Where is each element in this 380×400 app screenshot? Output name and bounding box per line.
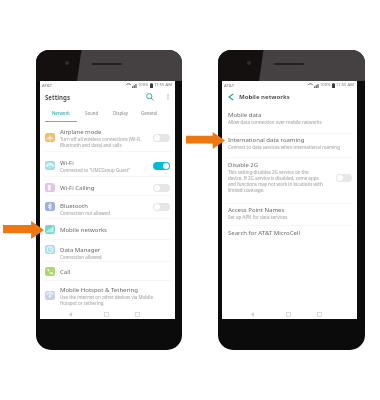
staticText: AT&T [42,82,53,88]
staticText: Mobile networks [60,226,107,234]
button[interactable]: Search for AT&T MicroCell [222,228,357,244]
button[interactable]: Recent apps [132,309,143,320]
staticText: Allow data connection over mobile networ… [228,119,322,125]
staticText: Set up APN for data services [228,214,288,220]
staticText: General [141,110,158,116]
button[interactable]: Mobile networks [40,222,175,237]
staticText: International data roaming [228,136,305,144]
button[interactable]: Display [106,106,134,120]
staticText: Connection allowed [60,254,102,260]
staticText: Mobile networks [239,93,290,101]
button[interactable]: Data Manager [40,242,175,262]
staticText: Mobile Hotspot & Tethering [60,286,138,294]
button[interactable]: Network [47,106,75,120]
staticText: Settings [45,93,70,101]
staticText: Bluetooth [60,202,88,210]
button[interactable]: Back [247,309,258,320]
staticText: Access Point Names [228,206,285,214]
staticText: Mobile data [228,111,262,119]
staticText: Connection not allowed [60,210,110,216]
button[interactable]: Search [144,91,156,103]
button[interactable]: Airplane mode [40,126,175,149]
staticText: AT&T [224,82,235,88]
staticText: 11:55 AM [154,82,172,88]
button[interactable]: Sound [78,106,106,120]
button[interactable]: Call [40,264,175,279]
staticText: Call [60,268,71,276]
staticText: Use the internet on other devices via Mo… [60,294,153,306]
button[interactable]: Mobile data [222,110,357,132]
staticText: Network [52,110,70,116]
staticText: This setting disables 2G service on the … [228,169,323,193]
button[interactable]: Disable 2G [222,160,357,198]
button[interactable]: Mobile Hotspot & Tethering [40,284,175,307]
staticText: Wi-Fi [60,159,74,167]
button[interactable]: Home [283,309,294,320]
staticText: Disable 2G [228,161,259,169]
staticText: 100% [320,82,331,88]
staticText: Search for AT&T MicroCell [228,229,300,237]
staticText: Connect to data services when internatio… [228,144,340,150]
button[interactable]: Wi-Fi [40,157,175,175]
button[interactable]: Bluetooth [40,199,175,218]
staticText: 100% [138,82,149,88]
staticText: Airplane mode [60,128,102,136]
staticText: 11:55 AM [336,82,354,88]
staticText: Data Manager [60,246,101,254]
button[interactable]: Back [65,309,76,320]
staticText: Connected to "UMCGroup Guest" [60,167,131,173]
button[interactable]: Access Point Names [222,205,357,227]
staticText: Sound [85,110,99,116]
staticText: Turn off all wireless connections (Wi-Fi… [60,136,142,148]
button[interactable]: General [135,106,163,120]
staticText: Wi-Fi Calling [60,184,95,192]
staticText: Display [113,110,128,116]
button[interactable]: Navigate up [225,91,237,103]
button[interactable]: Wi-Fi Calling [40,180,175,195]
button[interactable]: International data roaming [222,135,357,157]
button[interactable]: Recent apps [314,309,325,320]
button[interactable]: Home [101,309,112,320]
button[interactable]: More options [162,91,174,103]
